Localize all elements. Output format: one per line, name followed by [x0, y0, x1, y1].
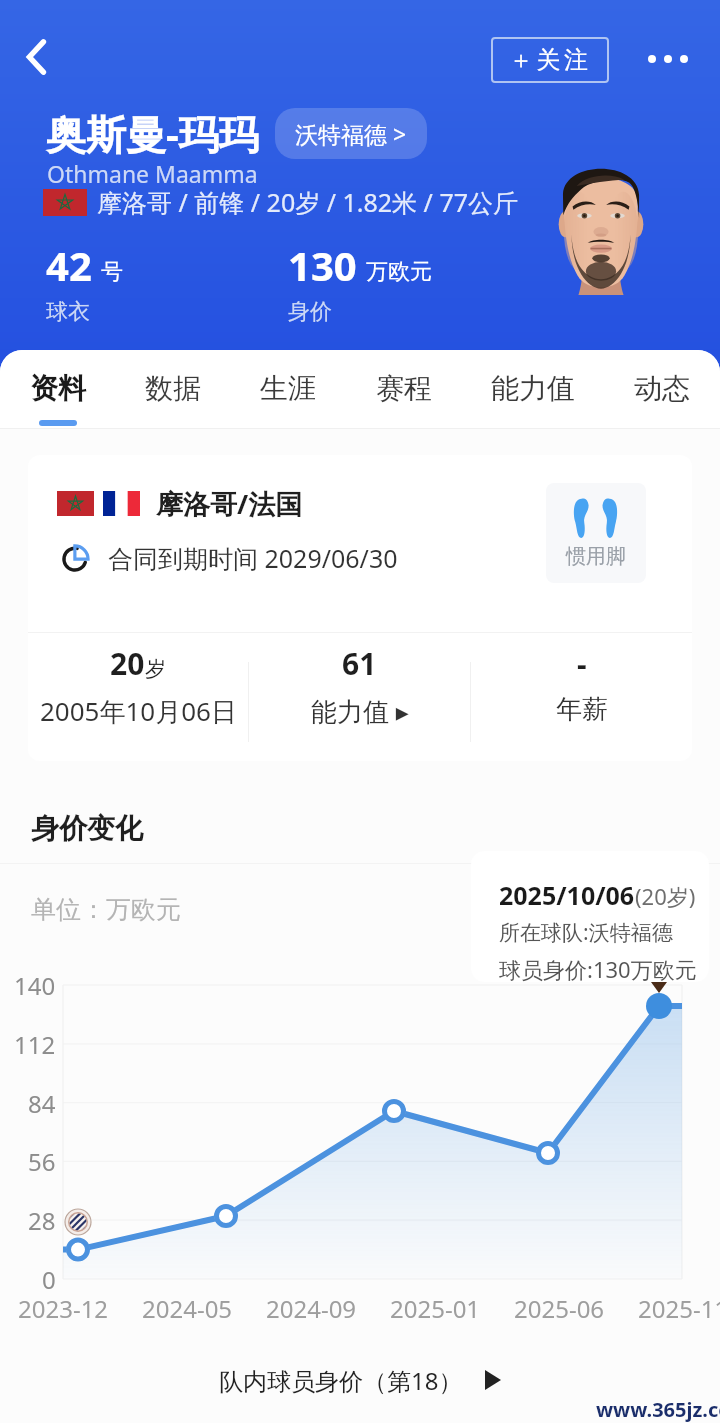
- button[interactable]: 动态: [628, 350, 696, 426]
- button[interactable]: 生涯: [254, 350, 322, 426]
- staticText: 2025/10/06: [499, 878, 635, 912]
- button[interactable]: 队内球员身价（第18）: [0, 1350, 720, 1410]
- staticText: 20: [110, 643, 145, 684]
- staticText: 惯用脚: [566, 544, 626, 569]
- button[interactable]: 能力值: [485, 350, 581, 426]
- button[interactable]: 数据: [139, 350, 207, 426]
- staticText: 沃特福德 >: [295, 118, 407, 149]
- staticText: 队内球员身价（第18）: [219, 1364, 463, 1397]
- staticText: 2025-01: [390, 1292, 481, 1325]
- staticText: 2024-09: [266, 1292, 357, 1325]
- staticText: 2025-11: [638, 1292, 720, 1325]
- staticText: 84: [28, 1087, 56, 1120]
- button[interactable]: More options: [639, 30, 697, 88]
- staticText: 奥斯曼-玛玛: [46, 106, 259, 161]
- staticText: 身价变化: [31, 811, 143, 846]
- staticText: 身价: [288, 298, 332, 326]
- staticText: 28: [28, 1204, 56, 1237]
- staticText: 资料: [30, 371, 86, 406]
- staticText: ＋关注: [509, 45, 592, 75]
- staticText: 数据: [145, 371, 201, 406]
- staticText: 合同到期时间 2029/06/30: [108, 541, 398, 575]
- staticText: 号: [101, 258, 123, 286]
- staticText: 61: [342, 643, 377, 684]
- button[interactable]: ＋关注: [491, 37, 609, 83]
- button[interactable]: 赛程: [370, 350, 438, 426]
- button[interactable]: 资料: [24, 350, 92, 426]
- button[interactable]: 沃特福德 >: [275, 108, 427, 159]
- staticText: Othmane Maamma: [47, 158, 258, 189]
- staticText: 所在球队:沃特福德: [499, 918, 673, 947]
- staticText: 生涯: [260, 371, 316, 406]
- staticText: 2025-06: [514, 1292, 605, 1325]
- staticText: 岁: [145, 656, 166, 682]
- staticText: 年薪: [556, 693, 608, 726]
- staticText: (20岁): [635, 881, 696, 911]
- staticText: 2024-05: [142, 1292, 233, 1325]
- staticText: 112: [14, 1028, 56, 1061]
- staticText: 能力值: [491, 371, 575, 406]
- button[interactable]: Back: [6, 26, 68, 88]
- staticText: 万欧元: [366, 258, 432, 286]
- staticText: 摩洛哥/法国: [156, 485, 303, 522]
- staticText: 2023-12: [18, 1292, 109, 1325]
- staticText: www.365jz.com: [596, 1396, 720, 1423]
- staticText: -: [577, 643, 587, 684]
- staticText: 球衣: [46, 298, 90, 326]
- staticText: 140: [14, 969, 56, 1002]
- button[interactable]: 惯用脚: [546, 483, 646, 583]
- staticText: 130: [288, 238, 357, 292]
- staticText: 42: [46, 238, 92, 292]
- staticText: 赛程: [376, 371, 432, 406]
- staticText: 0: [42, 1263, 56, 1296]
- staticText: 能力值 ▸: [311, 693, 409, 729]
- staticText: 球员身价:130万欧元: [499, 954, 697, 982]
- staticText: 动态: [634, 371, 690, 406]
- staticText: 摩洛哥 / 前锋 / 20岁 / 1.82米 / 77公斤: [97, 185, 519, 219]
- staticText: 56: [28, 1145, 56, 1178]
- staticText: 2005年10月06日: [40, 693, 237, 729]
- staticText: 单位：万欧元: [31, 894, 181, 925]
